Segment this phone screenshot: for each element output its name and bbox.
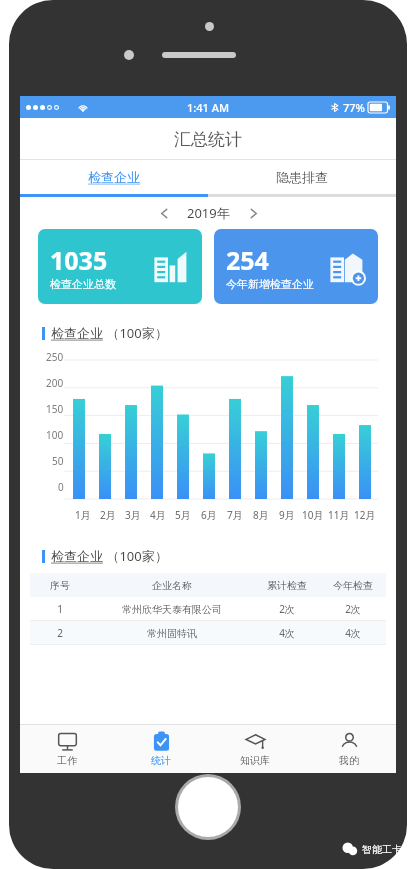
staticText: 2019年 — [187, 204, 230, 222]
staticText: 知识库 — [240, 754, 270, 767]
staticText: 今年检查 — [333, 579, 373, 592]
button[interactable]: Next year — [240, 200, 266, 226]
staticText: 常州固特讯 — [147, 627, 197, 640]
staticText: 检查企业 — [51, 548, 103, 564]
button[interactable]: 我的 — [302, 725, 396, 773]
staticText: 2月 — [100, 508, 116, 522]
button[interactable]: 1035 — [38, 229, 202, 304]
staticText: 11月 — [328, 508, 350, 522]
staticText: 1:41 AM — [187, 100, 230, 115]
staticText: 智能工卡 — [362, 843, 402, 856]
staticText: 检查企业总数 — [50, 277, 116, 291]
staticText: 4月 — [150, 508, 166, 522]
staticText: （100家） — [103, 324, 168, 342]
staticText: 3月 — [125, 508, 141, 522]
staticText: 200 — [46, 376, 64, 390]
staticText: 检查企业 — [51, 325, 103, 341]
staticText: 1 — [57, 602, 63, 616]
button[interactable]: 隐患排查 — [208, 160, 396, 194]
button[interactable]: 检查企业 — [20, 160, 208, 194]
staticText: 9月 — [279, 508, 295, 522]
staticText: 1月 — [75, 508, 91, 522]
staticText: 8月 — [253, 508, 269, 522]
staticText: 6月 — [201, 508, 217, 522]
staticText: 5月 — [175, 508, 191, 522]
staticText: 2 — [57, 626, 63, 640]
staticText: 4次 — [345, 626, 361, 640]
staticText: （100家） — [103, 547, 168, 565]
staticText: 2次 — [279, 602, 295, 616]
button[interactable]: 知识库 — [208, 725, 302, 773]
button[interactable]: 254 — [214, 229, 378, 304]
staticText: 50 — [52, 454, 64, 468]
staticText: 100 — [46, 428, 64, 442]
staticText: 检查企业 — [88, 169, 140, 185]
staticText: 4次 — [279, 626, 295, 640]
button[interactable]: 2 — [30, 621, 386, 645]
staticText: 序号 — [50, 579, 70, 592]
staticText: 汇总统计 — [174, 129, 242, 150]
staticText: 工作 — [57, 754, 77, 767]
staticText: 累计检查 — [267, 579, 307, 592]
staticText: 常州欣华天泰有限公司 — [122, 603, 222, 616]
staticText: 企业名称 — [152, 579, 192, 592]
staticText: 今年新增检查企业 — [226, 277, 314, 291]
staticText: 2次 — [345, 602, 361, 616]
button[interactable]: Previous year — [151, 200, 177, 226]
staticText: 统计 — [151, 754, 171, 767]
staticText: 7月 — [227, 508, 243, 522]
staticText: 0 — [58, 480, 64, 494]
button[interactable]: 统计 — [114, 725, 208, 773]
button[interactable]: 1 — [30, 597, 386, 621]
staticText: 我的 — [339, 754, 359, 767]
staticText: 250 — [46, 350, 64, 364]
button[interactable]: 工作 — [20, 725, 114, 773]
staticText: 隐患排查 — [276, 169, 328, 185]
staticText: 254 — [226, 243, 269, 277]
staticText: 150 — [46, 402, 64, 416]
staticText: 77% — [343, 100, 365, 115]
staticText: 10月 — [302, 508, 324, 522]
staticText: 12月 — [354, 508, 376, 522]
staticText: 1035 — [50, 243, 108, 277]
